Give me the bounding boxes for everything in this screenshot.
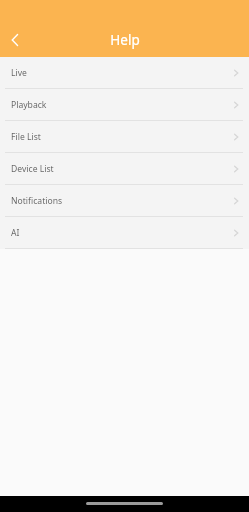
staticText: Live bbox=[11, 67, 231, 79]
button[interactable]: Live bbox=[0, 57, 249, 88]
staticText: Playback bbox=[11, 99, 231, 111]
button[interactable]: Notifications bbox=[0, 185, 249, 216]
staticText: File List bbox=[11, 131, 231, 143]
staticText: Help bbox=[110, 31, 140, 49]
button[interactable]: Device List bbox=[0, 153, 249, 184]
button[interactable]: File List bbox=[0, 121, 249, 152]
staticText: AI bbox=[11, 227, 231, 239]
staticText: Device List bbox=[11, 163, 231, 175]
button[interactable]: AI bbox=[0, 217, 249, 248]
staticText: Notifications bbox=[11, 195, 231, 207]
button[interactable]: Playback bbox=[0, 89, 249, 120]
button[interactable]: Back bbox=[0, 25, 30, 55]
